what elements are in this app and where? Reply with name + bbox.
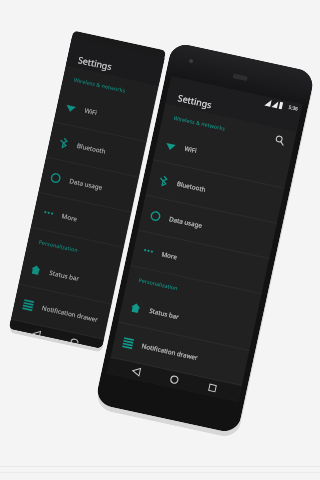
button[interactable]: Status bar <box>19 249 119 304</box>
staticText: Settings <box>77 53 114 72</box>
staticText: WiFi <box>84 106 98 117</box>
staticText: More <box>161 249 178 261</box>
button[interactable]: Bluetooth <box>146 160 284 223</box>
staticText: WiFi <box>184 144 198 155</box>
button[interactable]: WiFi <box>54 87 154 141</box>
button[interactable]: Home <box>64 332 87 345</box>
button[interactable]: Back <box>124 361 149 382</box>
button[interactable]: Data usage <box>138 195 277 258</box>
staticText: Personalization <box>38 238 79 253</box>
button[interactable]: Data usage <box>38 157 139 212</box>
button[interactable]: Search <box>270 130 289 149</box>
button[interactable]: Back <box>25 323 49 337</box>
button[interactable]: Status bar <box>118 287 257 350</box>
staticText: 5:36 <box>288 104 299 113</box>
button[interactable]: WiFi <box>153 125 292 188</box>
staticText: Notification drawer <box>141 341 199 362</box>
staticText: More <box>61 211 78 223</box>
staticText: Wireless & networks <box>73 76 127 94</box>
staticText: Notification drawer <box>41 303 100 324</box>
staticText: Status bar <box>49 268 81 283</box>
button[interactable]: More <box>131 231 269 293</box>
staticText: Wireless & networks <box>173 114 226 132</box>
button[interactable]: Recent apps <box>200 378 225 398</box>
button[interactable]: Bluetooth <box>46 122 146 177</box>
button[interactable]: Notification drawer <box>11 284 111 339</box>
staticText: Personalization <box>138 276 179 291</box>
staticText: Bluetooth <box>76 141 107 156</box>
button[interactable]: Notification drawer <box>111 323 249 385</box>
staticText: Settings <box>177 91 214 110</box>
staticText: Data usage <box>68 176 104 192</box>
staticText: Status bar <box>148 306 181 321</box>
button[interactable]: Home <box>162 370 187 390</box>
button[interactable]: More <box>31 193 131 247</box>
staticText: Bluetooth <box>176 179 207 194</box>
staticText: Data usage <box>168 214 203 230</box>
